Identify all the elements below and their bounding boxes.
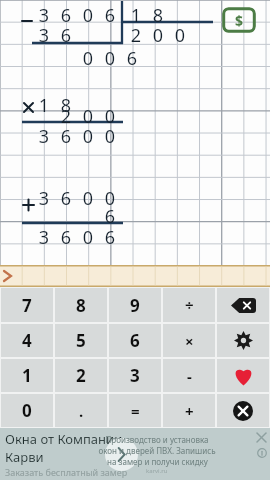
button[interactable]: 5: [55, 324, 107, 357]
staticText: 6: [55, 225, 77, 250]
button[interactable]: ×: [163, 324, 215, 357]
staticText: на замер и получи скидку: [107, 456, 208, 467]
staticText: 6: [55, 3, 77, 28]
button[interactable]: .: [55, 394, 107, 427]
staticText: 7: [22, 294, 32, 317]
button[interactable]: Open ad: [105, 438, 138, 471]
staticText: 0: [77, 186, 99, 211]
staticText: окон и дверей ПВХ. Запишись: [98, 445, 216, 456]
staticText: 8: [147, 3, 169, 28]
staticText: 0: [99, 124, 121, 149]
button[interactable]: 2: [55, 359, 107, 392]
button[interactable]: 6: [109, 324, 161, 357]
staticText: 6: [130, 329, 140, 352]
staticText: 3: [33, 3, 55, 28]
staticText: Производство и установка: [105, 434, 209, 445]
staticText: 6: [99, 204, 121, 229]
staticText: 0: [77, 225, 99, 250]
staticText: 0: [169, 23, 191, 48]
staticText: 0: [99, 46, 121, 71]
button[interactable]: 4: [1, 324, 53, 357]
staticText: 3: [33, 23, 55, 48]
button[interactable]: -: [163, 359, 215, 392]
staticText: 3: [33, 225, 55, 250]
staticText: 3: [33, 186, 55, 211]
staticText: 6: [55, 23, 77, 48]
staticText: 8: [76, 294, 86, 317]
staticText: .: [79, 401, 84, 421]
staticText: Заказать бесплатный замер: [5, 466, 128, 478]
staticText: 6: [55, 124, 77, 149]
staticText: 5: [76, 329, 86, 352]
staticText: Окна от Компании: [5, 430, 123, 448]
button[interactable]: 9: [109, 288, 161, 322]
staticText: 9: [130, 294, 140, 317]
staticText: 3: [33, 124, 55, 149]
staticText: 8: [55, 93, 77, 118]
button[interactable]: Favorite: [217, 359, 269, 392]
button[interactable]: =: [109, 394, 161, 427]
staticText: 0: [99, 104, 121, 129]
staticText: 0: [147, 23, 169, 48]
staticText: 0: [99, 186, 121, 211]
staticText: 0: [77, 3, 99, 28]
button[interactable]: 3: [109, 359, 161, 392]
button[interactable]: Ad info: [254, 445, 269, 460]
staticText: 6: [121, 46, 143, 71]
staticText: 0: [22, 399, 32, 422]
button[interactable]: 1: [1, 359, 53, 392]
staticText: 2: [55, 104, 77, 129]
staticText: =: [131, 401, 140, 421]
staticText: 0: [77, 104, 99, 129]
button[interactable]: +: [163, 394, 215, 427]
staticText: 4: [22, 329, 32, 352]
staticText: 6: [99, 3, 121, 28]
staticText: karvi.ru: [146, 467, 168, 475]
staticText: 2: [125, 23, 147, 48]
staticText: 0: [77, 124, 99, 149]
button[interactable]: Backspace: [217, 288, 269, 322]
staticText: 1: [33, 93, 55, 118]
staticText: 3: [130, 364, 140, 387]
staticText: 0: [77, 46, 99, 71]
staticText: 6: [99, 225, 121, 250]
button[interactable]: Remove ads: [222, 7, 256, 33]
staticText: $: [235, 11, 244, 30]
button[interactable]: [0, 265, 270, 287]
button[interactable]: 7: [1, 288, 53, 322]
button[interactable]: Окна от Компании: [0, 428, 270, 480]
staticText: ×: [185, 331, 194, 351]
button[interactable]: Clear: [217, 394, 269, 427]
button[interactable]: Settings: [217, 324, 269, 357]
button[interactable]: ÷: [163, 288, 215, 322]
staticText: 2: [76, 364, 86, 387]
button[interactable]: Close ad: [254, 430, 269, 445]
staticText: ÷: [185, 295, 194, 315]
button[interactable]: 8: [55, 288, 107, 322]
staticText: +: [185, 401, 194, 421]
staticText: 1: [125, 3, 147, 28]
staticText: -: [187, 366, 192, 386]
staticText: Карви: [5, 448, 44, 466]
button[interactable]: 0: [1, 394, 53, 427]
staticText: 6: [55, 186, 77, 211]
staticText: 1: [22, 364, 32, 387]
